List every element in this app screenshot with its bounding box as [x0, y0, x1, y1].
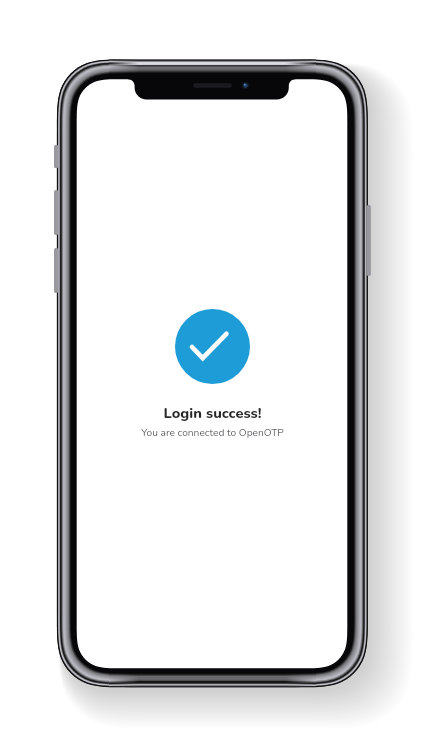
staticText: Login success!: [163, 403, 262, 423]
staticText: You are connected to OpenOTP: [141, 426, 284, 440]
button[interactable]: Login successful: [175, 309, 250, 384]
